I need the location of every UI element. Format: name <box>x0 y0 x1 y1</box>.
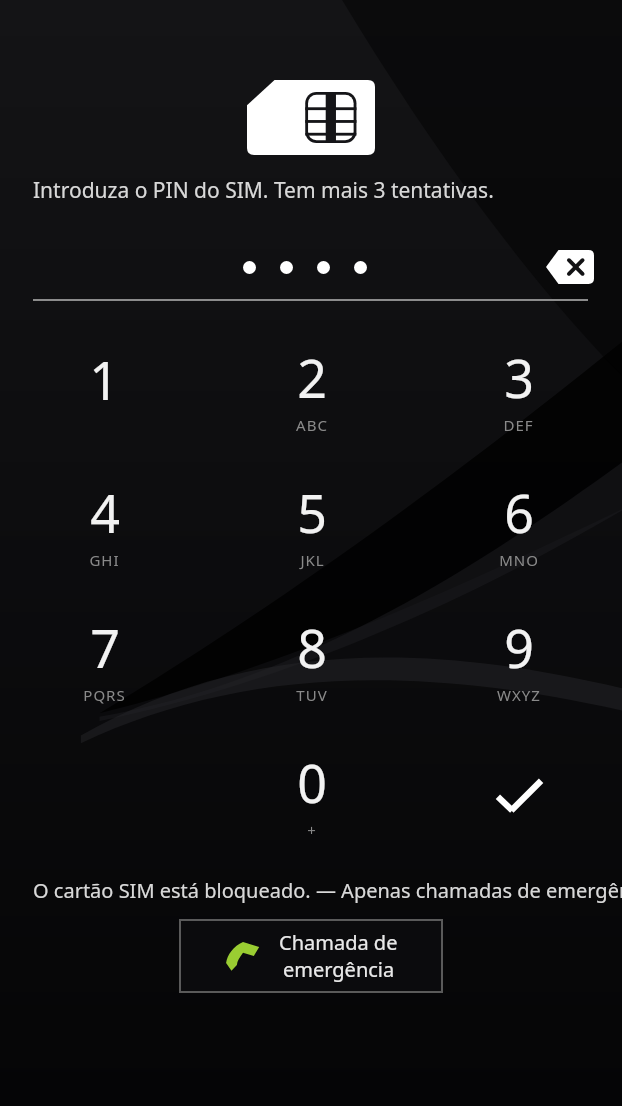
staticText: Introduza o PIN do SIM. Tem mais 3 tenta… <box>33 176 494 205</box>
button[interactable]: 1 <box>0 323 208 458</box>
button[interactable]: 7 <box>0 593 208 728</box>
button[interactable]: Chamada de <box>180 920 442 992</box>
staticText: 3 <box>504 342 534 413</box>
button[interactable]: 6 <box>415 458 622 593</box>
staticText: 7 <box>90 612 120 683</box>
staticText: 2 <box>297 342 327 413</box>
button[interactable]: 9 <box>415 593 622 728</box>
staticText: 6 <box>504 477 534 548</box>
button[interactable]: 3 <box>415 323 622 458</box>
button[interactable]: 5 <box>208 458 415 593</box>
staticText: DEF <box>503 415 534 435</box>
staticText: O cartão SIM está bloqueado. — Apenas ch… <box>33 877 622 904</box>
button[interactable]: 4 <box>0 458 208 593</box>
staticText: + <box>307 820 317 840</box>
staticText: ABC <box>296 415 328 435</box>
staticText: emergência <box>283 956 395 983</box>
staticText: JKL <box>300 550 325 570</box>
button[interactable]: 0 <box>208 728 415 863</box>
staticText: Chamada de <box>279 929 398 956</box>
button[interactable]: Delete <box>534 244 606 290</box>
button[interactable]: 8 <box>208 593 415 728</box>
staticText: GHI <box>89 550 120 570</box>
staticText: 4 <box>90 477 120 548</box>
staticText: 1 <box>89 344 119 415</box>
button[interactable]: 2 <box>208 323 415 458</box>
staticText: MNO <box>499 550 539 570</box>
staticText: TUV <box>296 685 328 705</box>
button[interactable]: Confirm PIN <box>415 728 622 863</box>
staticText: WXYZ <box>497 685 541 705</box>
staticText: 9 <box>504 612 534 683</box>
staticText: 0 <box>297 747 327 818</box>
staticText: 5 <box>297 477 327 548</box>
staticText: PQRS <box>83 685 126 705</box>
staticText: 8 <box>297 612 327 683</box>
